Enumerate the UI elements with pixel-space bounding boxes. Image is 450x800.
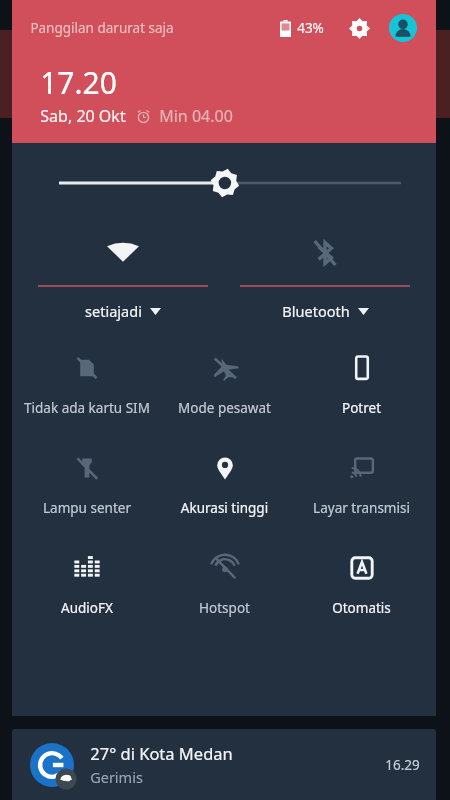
button[interactable]: Mode pesawat xyxy=(156,349,293,419)
button[interactable]: Bluetooth xyxy=(240,231,410,321)
staticText: AudioFX xyxy=(18,599,156,617)
button[interactable]: Akurasi tinggi xyxy=(156,449,293,519)
staticText: Min 04.00 xyxy=(159,105,233,127)
staticText: Sab, 20 Okt xyxy=(40,105,126,127)
staticText: Bluetooth xyxy=(282,301,350,321)
button[interactable]: Potret xyxy=(293,349,430,419)
button[interactable]: Settings xyxy=(344,13,374,43)
button[interactable]: Brightness xyxy=(12,157,436,209)
staticText: Akurasi tinggi xyxy=(156,499,293,517)
staticText: Potret xyxy=(293,399,430,417)
staticText: Panggilan darurat saja xyxy=(30,19,174,37)
staticText: 17.20 xyxy=(40,62,117,103)
staticText: Otomatis xyxy=(293,599,430,617)
staticText: 43% xyxy=(297,19,324,37)
staticText: setiajadi xyxy=(85,301,142,321)
button[interactable]: setiajadi xyxy=(38,231,208,321)
button[interactable]: AudioFX xyxy=(18,549,156,619)
staticText: Mode pesawat xyxy=(156,399,293,417)
staticText: 27° di Kota Medan xyxy=(90,742,233,764)
button[interactable]: Layar transmisi xyxy=(293,449,430,519)
staticText: Layar transmisi xyxy=(293,499,430,517)
button[interactable]: Otomatis xyxy=(293,549,430,619)
button[interactable]: User profile xyxy=(388,13,418,43)
staticText: Hotspot xyxy=(156,599,293,617)
staticText: Lampu senter xyxy=(18,499,156,517)
button[interactable]: 27° di Kota Medan xyxy=(12,729,436,800)
staticText: Tidak ada kartu SIM xyxy=(18,399,156,417)
staticText: Gerimis xyxy=(90,767,143,787)
button[interactable]: Hotspot xyxy=(156,549,293,619)
button[interactable]: Lampu senter xyxy=(18,449,156,519)
button[interactable]: Tidak ada kartu SIM xyxy=(18,349,156,419)
staticText: 16.29 xyxy=(385,756,420,774)
